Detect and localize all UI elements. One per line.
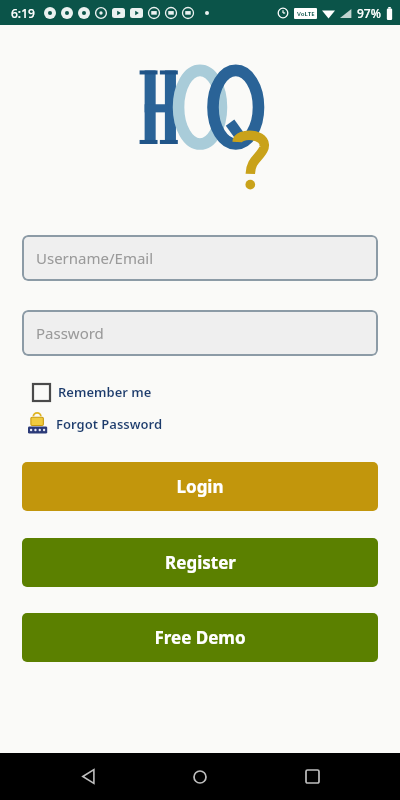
button[interactable]: Back bbox=[64, 753, 112, 800]
staticText: Username/Email bbox=[36, 248, 154, 268]
button[interactable]: Register bbox=[22, 538, 378, 587]
button[interactable]: Remember me bbox=[33, 383, 152, 401]
button[interactable]: Forgot password bbox=[28, 412, 163, 436]
staticText: Free Demo bbox=[154, 626, 246, 649]
staticText: Register bbox=[165, 551, 236, 574]
staticText: Forgot Password bbox=[56, 415, 163, 433]
staticText: Login bbox=[176, 475, 224, 498]
staticText: 97% bbox=[357, 5, 381, 21]
button[interactable]: Home bbox=[176, 753, 224, 800]
button[interactable]: Username/Email bbox=[22, 235, 378, 281]
staticText: 6:19 bbox=[11, 5, 35, 21]
staticText: Password bbox=[36, 323, 104, 343]
other: Forgot password bbox=[28, 412, 52, 436]
button[interactable]: Free Demo bbox=[22, 613, 378, 662]
staticText: Remember me bbox=[58, 383, 152, 401]
button[interactable]: Password bbox=[22, 310, 378, 356]
button[interactable]: Login bbox=[22, 462, 378, 511]
staticText: VoLTE bbox=[297, 10, 315, 18]
button[interactable]: Recent apps bbox=[288, 753, 336, 800]
